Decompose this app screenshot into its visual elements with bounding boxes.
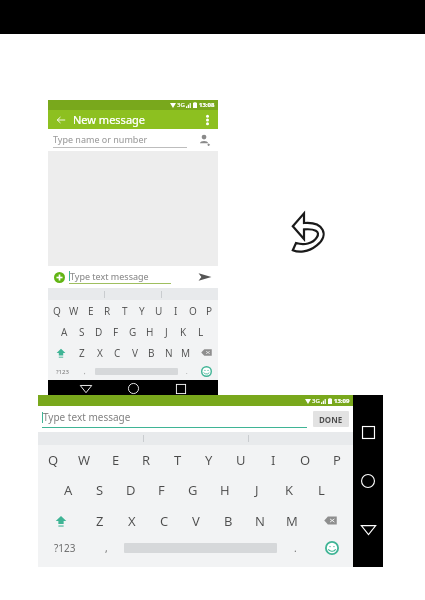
button[interactable]: C xyxy=(109,342,126,363)
button[interactable] xyxy=(93,363,179,380)
button[interactable]: L xyxy=(192,321,209,342)
button[interactable]: W xyxy=(65,300,82,321)
button[interactable]: R xyxy=(99,300,116,321)
button[interactable]: Recents xyxy=(171,380,191,397)
button[interactable]: H xyxy=(209,475,241,505)
staticText: H xyxy=(146,325,154,339)
button[interactable]: U xyxy=(150,300,167,321)
button[interactable]: G xyxy=(124,321,141,342)
button[interactable]: V xyxy=(126,342,143,363)
button[interactable]: ?123 xyxy=(38,536,91,560)
button[interactable]: , xyxy=(77,363,93,380)
button[interactable]: I xyxy=(257,445,289,475)
button[interactable]: L xyxy=(305,475,337,505)
button[interactable]: Add contact xyxy=(197,132,213,148)
button[interactable]: Back xyxy=(356,518,380,542)
button[interactable]: Back xyxy=(48,110,218,129)
button[interactable]: S xyxy=(84,475,115,505)
button[interactable] xyxy=(104,288,161,300)
button[interactable]: I xyxy=(167,300,184,321)
button[interactable]: Home xyxy=(123,380,143,397)
staticText: O xyxy=(300,451,311,469)
button[interactable]: More options xyxy=(201,114,213,126)
staticText: Q xyxy=(48,451,59,469)
button[interactable]: G xyxy=(177,475,209,505)
button[interactable]: . xyxy=(280,536,310,560)
button[interactable]: W xyxy=(69,445,100,475)
button[interactable]: D xyxy=(90,321,107,342)
button[interactable]: Z xyxy=(73,342,91,363)
button[interactable]: Q xyxy=(38,445,69,475)
button[interactable]: C xyxy=(148,505,180,536)
button[interactable]: K xyxy=(175,321,192,342)
button[interactable]: Home xyxy=(356,469,380,493)
button[interactable]: D xyxy=(115,475,146,505)
button[interactable]: B xyxy=(143,342,160,363)
button[interactable]: K xyxy=(273,475,305,505)
button[interactable]: Y xyxy=(133,300,150,321)
button[interactable]: J xyxy=(241,475,273,505)
button[interactable]: Shift xyxy=(48,342,73,363)
button[interactable]: Type text message xyxy=(69,270,196,284)
button[interactable]: DONE xyxy=(313,411,349,427)
button[interactable]: H xyxy=(141,321,158,342)
button[interactable] xyxy=(195,363,218,380)
button[interactable]: B xyxy=(212,505,244,536)
staticText: J xyxy=(165,325,168,339)
button[interactable]: E xyxy=(82,300,99,321)
staticText: , xyxy=(84,368,86,376)
button[interactable]: P xyxy=(201,300,218,321)
button[interactable]: Shift xyxy=(38,505,84,536)
button[interactable]: Send xyxy=(196,268,214,286)
button[interactable]: F xyxy=(146,475,177,505)
button[interactable]: Y xyxy=(193,445,225,475)
button[interactable]: T xyxy=(116,300,133,321)
button[interactable]: M xyxy=(276,505,308,536)
button[interactable] xyxy=(161,288,218,300)
button[interactable]: M xyxy=(177,342,194,363)
staticText: S xyxy=(96,481,104,499)
button[interactable]: Backspace xyxy=(194,342,218,363)
button[interactable]: X xyxy=(91,342,109,363)
button[interactable]: Attach xyxy=(52,270,66,284)
button[interactable]: N xyxy=(244,505,276,536)
button[interactable]: O xyxy=(289,445,321,475)
button[interactable]: Type text message xyxy=(42,410,307,428)
button[interactable]: N xyxy=(160,342,177,363)
button[interactable]: P xyxy=(321,445,353,475)
staticText: V xyxy=(192,512,200,530)
button[interactable]: Backspace xyxy=(308,505,353,536)
staticText: I xyxy=(271,451,276,469)
button[interactable]: Q xyxy=(48,300,65,321)
button[interactable] xyxy=(121,536,280,560)
button[interactable]: Z xyxy=(84,505,116,536)
button[interactable]: F xyxy=(107,321,124,342)
button[interactable]: Type name or number xyxy=(53,129,213,151)
button[interactable]: ?123 xyxy=(48,363,77,380)
staticText: P xyxy=(333,451,341,469)
button[interactable]: T xyxy=(162,445,193,475)
staticText: U xyxy=(236,451,246,469)
button[interactable]: E xyxy=(100,445,131,475)
button[interactable]: A xyxy=(56,321,73,342)
button[interactable]: , xyxy=(91,536,121,560)
button[interactable]: V xyxy=(180,505,212,536)
button[interactable] xyxy=(310,536,353,560)
button[interactable]: Back xyxy=(54,113,68,127)
button[interactable]: O xyxy=(184,300,201,321)
button[interactable]: S xyxy=(73,321,90,342)
button[interactable]: X xyxy=(116,505,148,536)
staticText: ?123 xyxy=(56,368,69,376)
button[interactable]: A xyxy=(53,475,84,505)
button[interactable]: R xyxy=(131,445,162,475)
button[interactable]: Recents xyxy=(356,420,380,444)
button[interactable]: J xyxy=(158,321,175,342)
button[interactable]: Back xyxy=(76,380,96,397)
staticText: F xyxy=(158,481,165,499)
button[interactable]: U xyxy=(225,445,257,475)
